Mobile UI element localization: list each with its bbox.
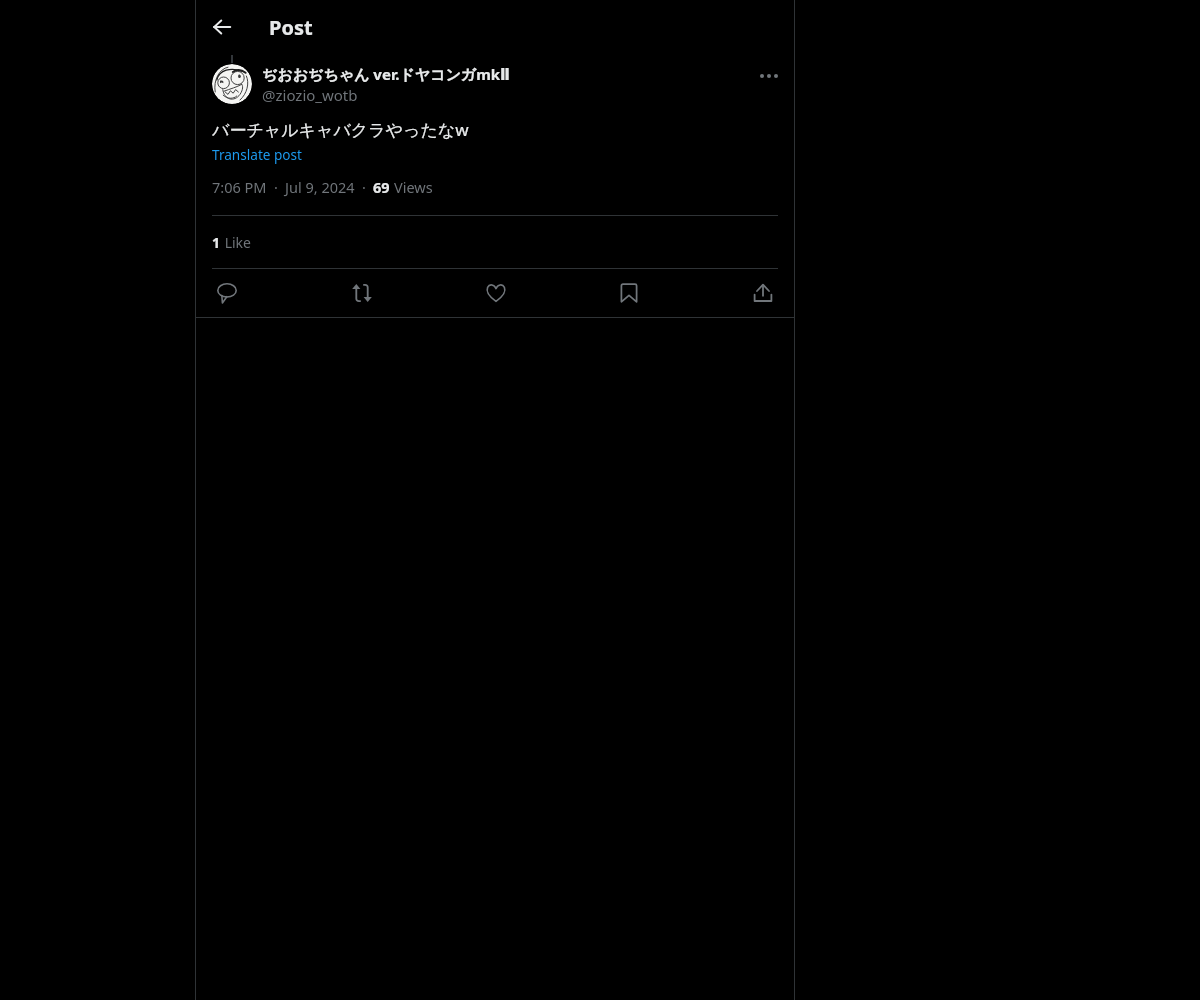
staticText: Translate post <box>212 145 303 164</box>
button[interactable]: Share <box>746 276 780 310</box>
button[interactable]: Bookmark <box>612 276 646 310</box>
staticText: 7:06 PM <box>212 177 267 197</box>
staticText: ぢおおぢちゃん ver.ドヤコンガmkⅡ <box>262 64 510 84</box>
button[interactable]: Translate post <box>212 145 303 164</box>
button[interactable]: Back <box>204 9 240 45</box>
staticText: Views <box>394 177 433 197</box>
staticText: Like <box>221 233 251 252</box>
staticText: バーチャルキャバクラやったなw <box>212 118 469 141</box>
staticText: · <box>274 177 278 197</box>
staticText: Jul 9, 2024 <box>285 177 355 197</box>
button[interactable]: Like <box>479 276 513 310</box>
button[interactable]: Repost <box>345 276 379 310</box>
button[interactable] <box>212 64 252 104</box>
button[interactable]: Reply <box>210 276 244 310</box>
staticText: Post <box>269 14 313 41</box>
button[interactable]: More options <box>752 63 784 89</box>
staticText: @ziozio_wotb <box>262 85 358 105</box>
staticText: · <box>362 177 366 197</box>
staticText: 1 <box>212 233 221 252</box>
staticText: 69 <box>373 177 390 197</box>
